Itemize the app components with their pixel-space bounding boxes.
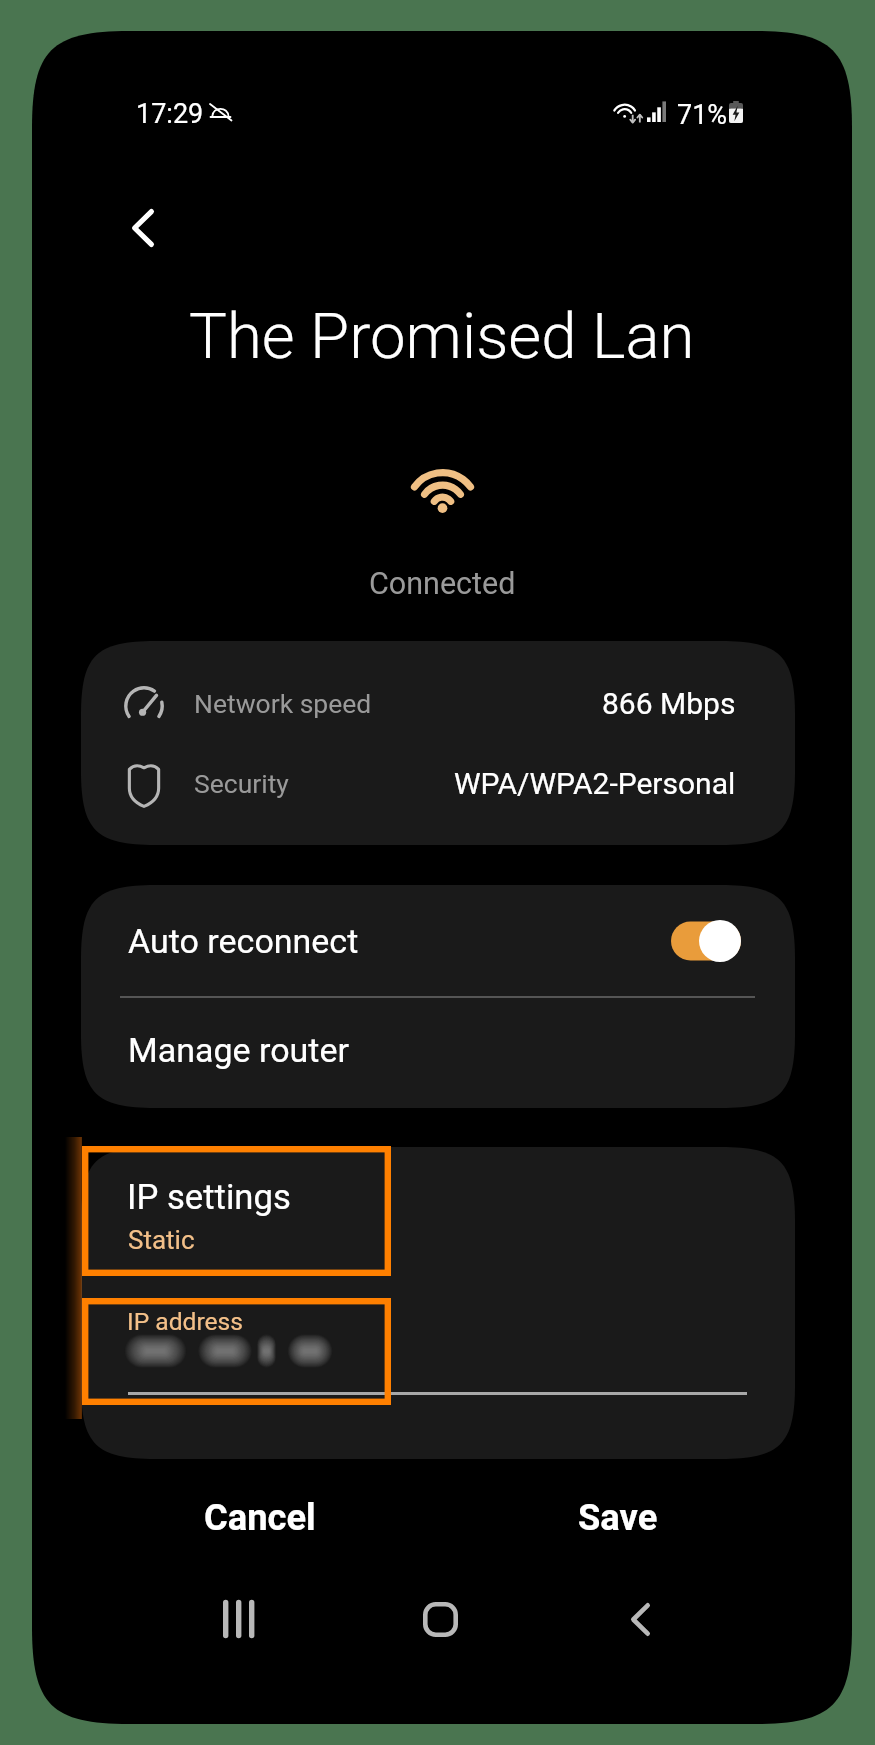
button[interactable]: Recent apps xyxy=(183,1579,295,1659)
staticText: Static xyxy=(128,1225,195,1255)
button[interactable]: Save xyxy=(520,1473,716,1561)
button[interactable]: Manage router xyxy=(81,995,795,1105)
button[interactable]: Cancel xyxy=(162,1473,358,1561)
staticText: IP settings xyxy=(127,1177,291,1218)
staticText: WPA/WPA2-Personal xyxy=(454,766,736,801)
button[interactable]: IP settings xyxy=(81,1147,795,1279)
button[interactable]: Back xyxy=(584,1579,696,1659)
staticText: Network speed xyxy=(194,688,372,719)
staticText: The Promised Lan xyxy=(189,299,695,373)
staticText: 17:29 xyxy=(136,98,204,130)
staticText: Manage router xyxy=(128,1030,349,1070)
button[interactable]: Navigate up xyxy=(107,192,179,264)
staticText: Cancel xyxy=(204,1496,316,1539)
button[interactable]: Home xyxy=(384,1579,496,1659)
staticText: 866 Mbps xyxy=(602,686,736,721)
staticText: IP address xyxy=(127,1307,243,1336)
staticText: Security xyxy=(194,768,289,799)
staticText: Connected xyxy=(369,566,516,602)
staticText: 71% xyxy=(677,99,728,131)
staticText: Auto reconnect xyxy=(128,921,359,961)
button[interactable]: Auto reconnect xyxy=(81,885,795,997)
staticText: Save xyxy=(578,1496,658,1539)
button[interactable]: Auto reconnect xyxy=(669,918,743,964)
button[interactable]: IP address xyxy=(128,1297,747,1397)
